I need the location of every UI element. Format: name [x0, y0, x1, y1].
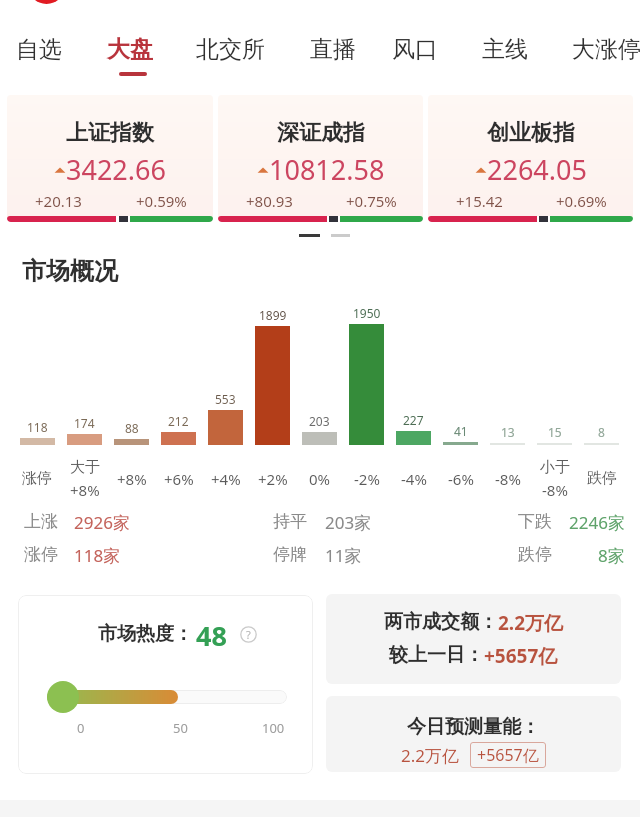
staticText: 0%: [309, 469, 331, 489]
button[interactable]: 深证成指: [218, 95, 423, 222]
staticText: 203: [309, 413, 330, 429]
staticText: 小于: [540, 458, 570, 477]
button[interactable]: 市场热度：: [18, 595, 313, 774]
staticText: 大盘: [107, 35, 153, 64]
button[interactable]: 今日预测量能：: [326, 696, 621, 772]
button[interactable]: 大盘: [99, 31, 161, 68]
staticText: 市场概况: [22, 256, 118, 286]
staticText: 持平: [273, 511, 307, 532]
staticText: 今日预测量能：: [407, 715, 540, 739]
button[interactable]: 主线: [474, 31, 536, 68]
staticText: 118: [27, 419, 48, 435]
staticText: 0: [77, 719, 85, 737]
staticText: 10812.58: [269, 151, 385, 188]
staticText: 两市成交额：: [384, 610, 498, 634]
staticText: 深证成指: [277, 119, 365, 147]
staticText: -8%: [542, 480, 568, 500]
staticText: 2246家: [569, 511, 625, 534]
button[interactable]: 风口: [384, 31, 446, 68]
staticText: 41: [454, 423, 468, 439]
staticText: 174: [74, 415, 95, 431]
staticText: 跌停: [587, 469, 617, 488]
staticText: 88: [125, 420, 139, 436]
staticText: +0.75%: [346, 191, 397, 211]
staticText: 下跌: [518, 511, 552, 532]
staticText: 3422.66: [66, 151, 166, 188]
staticText: ?: [246, 627, 251, 642]
staticText: 212: [168, 413, 189, 429]
staticText: -2%: [354, 469, 380, 489]
staticText: -8%: [495, 469, 521, 489]
staticText: 227: [403, 412, 424, 428]
staticText: 自选: [16, 35, 62, 64]
staticText: 跌停: [518, 544, 552, 565]
staticText: 2.2万亿: [498, 610, 564, 636]
staticText: 13: [501, 424, 515, 440]
staticText: 15: [548, 424, 562, 440]
button[interactable]: 自选: [8, 31, 70, 68]
button[interactable]: 创业板指: [428, 95, 633, 222]
staticText: 直播: [310, 35, 356, 64]
staticText: 大于: [70, 458, 100, 477]
staticText: 大涨停: [572, 35, 640, 64]
staticText: 48: [196, 617, 227, 654]
staticText: 11家: [325, 544, 362, 567]
staticText: +5657亿: [484, 643, 558, 669]
staticText: 553: [215, 391, 236, 407]
staticText: +2%: [258, 469, 288, 489]
staticText: +20.13: [35, 191, 82, 211]
staticText: 203家: [325, 511, 372, 534]
staticText: 100: [262, 719, 285, 737]
staticText: 2.2万亿: [401, 744, 460, 767]
staticText: 1899: [259, 307, 287, 323]
staticText: 较上一日：: [389, 643, 484, 667]
staticText: 2926家: [74, 511, 130, 534]
staticText: +8%: [117, 469, 147, 489]
staticText: 创业板指: [487, 119, 575, 147]
staticText: 主线: [482, 35, 528, 64]
staticText: 风口: [392, 35, 438, 64]
staticText: -4%: [401, 469, 427, 489]
button[interactable]: 大涨停: [564, 31, 640, 68]
button[interactable]: 直播: [302, 31, 364, 68]
button[interactable]: 上证指数: [7, 95, 213, 222]
staticText: -6%: [448, 469, 474, 489]
staticText: +8%: [70, 480, 100, 500]
staticText: 2264.05: [487, 151, 587, 188]
staticText: +80.93: [246, 191, 293, 211]
button[interactable]: 北交所: [188, 31, 273, 68]
staticText: 118家: [74, 544, 121, 567]
staticText: +0.69%: [556, 191, 607, 211]
staticText: 停牌: [273, 544, 307, 565]
staticText: 北交所: [196, 35, 265, 64]
staticText: 8家: [598, 544, 625, 567]
staticText: +15.42: [456, 191, 503, 211]
staticText: 涨停: [24, 544, 58, 565]
staticText: 上证指数: [66, 119, 154, 147]
staticText: +0.59%: [136, 191, 187, 211]
staticText: 涨停: [22, 469, 52, 488]
staticText: +6%: [164, 469, 194, 489]
staticText: 8: [598, 424, 605, 440]
staticText: 50: [173, 719, 188, 737]
staticText: +4%: [211, 469, 241, 489]
staticText: 1950: [353, 305, 381, 321]
button[interactable]: 两市成交额：: [326, 594, 621, 684]
staticText: 市场热度：: [98, 622, 193, 646]
staticText: +5657亿: [477, 744, 539, 766]
staticText: 上涨: [24, 511, 58, 532]
